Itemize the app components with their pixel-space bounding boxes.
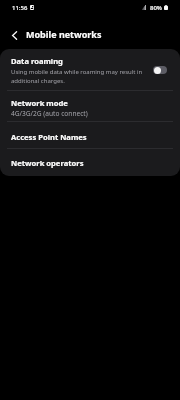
button[interactable]: Network mode [0, 90, 180, 121]
staticText: Mobile networks [26, 28, 102, 40]
staticText: Network operators [11, 158, 84, 168]
staticText: Network mode [11, 98, 68, 108]
button[interactable]: Navigate up [4, 25, 25, 46]
button[interactable]: Access Point Names [0, 121, 180, 148]
staticText: Access Point Names [11, 132, 87, 142]
staticText: Data roaming [11, 56, 63, 66]
button[interactable]: Data roaming switch, off [153, 66, 167, 74]
staticText: 11:56 [12, 4, 28, 12]
staticText: 80% [150, 4, 162, 12]
staticText: Using mobile data while roaming may resu… [11, 68, 145, 85]
staticText: 4G/3G/2G (auto connect) [11, 109, 88, 118]
button[interactable]: Data roaming [0, 49, 180, 90]
button[interactable]: Network operators [0, 148, 180, 176]
